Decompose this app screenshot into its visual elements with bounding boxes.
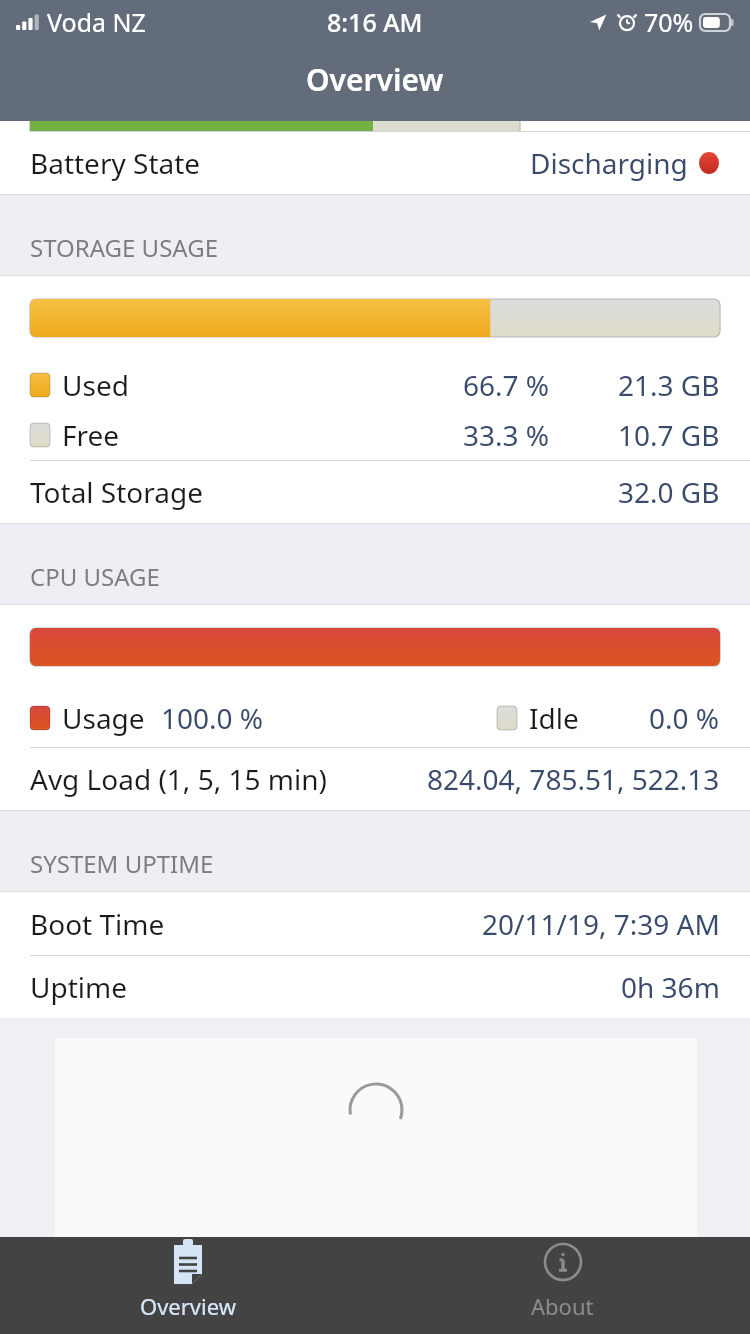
staticText: Free [62, 416, 120, 454]
button[interactable]: Battery State [0, 131, 750, 194]
staticText: Boot Time [30, 905, 165, 943]
staticText: Usage [62, 699, 145, 737]
button[interactable]: About [375, 1237, 750, 1321]
staticText: Used [62, 366, 129, 404]
staticText: 10.7 GB [618, 416, 720, 454]
staticText: 66.7 % [463, 366, 550, 404]
staticText: 824.04, 785.51, 522.13 [427, 760, 720, 798]
staticText: About [531, 1291, 594, 1321]
staticText: 0.0 % [649, 699, 720, 737]
button[interactable]: Boot Time [0, 892, 750, 955]
staticText: 100.0 % [161, 699, 264, 737]
staticText: 70% [644, 5, 694, 39]
button[interactable]: Avg Load (1, 5, 15 min) [0, 747, 750, 810]
staticText: Discharging [530, 144, 688, 182]
staticText: Avg Load (1, 5, 15 min) [30, 760, 327, 798]
staticText: 33.3 % [463, 416, 550, 454]
staticText: Overview [140, 1291, 236, 1321]
staticText: 0h 36m [621, 968, 720, 1006]
button[interactable]: Overview [0, 1237, 375, 1321]
staticText: STORAGE USAGE [30, 231, 219, 264]
staticText: 8:16 AM [327, 5, 423, 39]
staticText: Voda NZ [47, 5, 146, 39]
button[interactable]: Free [0, 410, 750, 460]
staticText: SYSTEM UPTIME [30, 847, 214, 880]
button[interactable]: Used [0, 360, 750, 410]
staticText: Uptime [30, 968, 127, 1006]
button[interactable]: Total Storage [0, 460, 750, 523]
staticText: 21.3 GB [618, 366, 720, 404]
staticText: 32.0 GB [618, 473, 720, 511]
button[interactable]: Usage [0, 689, 750, 747]
staticText: Idle [529, 699, 579, 737]
staticText: CPU USAGE [30, 560, 160, 593]
button[interactable]: Uptime [0, 955, 750, 1018]
staticText: Overview [306, 59, 444, 100]
staticText: Battery State [30, 144, 201, 182]
staticText: Total Storage [30, 473, 204, 511]
staticText: 20/11/19, 7:39 AM [482, 905, 720, 943]
